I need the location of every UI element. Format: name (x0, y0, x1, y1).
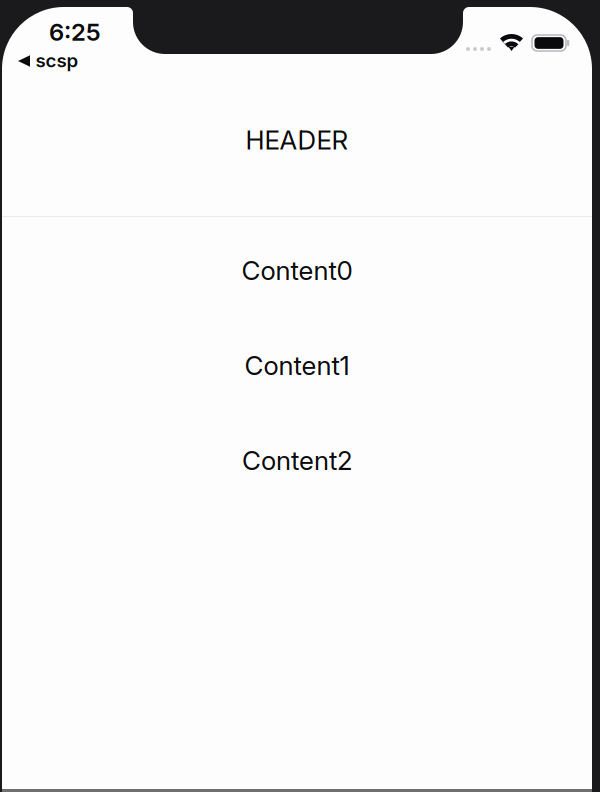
staticText: Content2 (242, 445, 352, 476)
button[interactable]: scsp (2, 51, 592, 71)
staticText: 6:25 (49, 17, 101, 46)
staticText: Content0 (241, 255, 352, 286)
staticText: HEADER (245, 124, 348, 156)
button[interactable]: Content0 (2, 223, 592, 318)
staticText: Content1 (244, 350, 349, 381)
button[interactable]: Content1 (2, 318, 592, 413)
staticText: scsp (35, 49, 78, 72)
button[interactable]: Content2 (2, 413, 592, 508)
